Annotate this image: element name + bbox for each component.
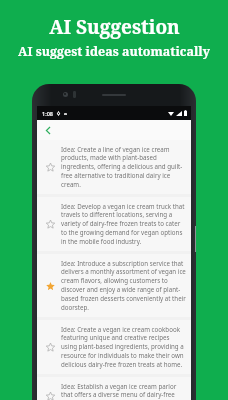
button[interactable]: Favorite xyxy=(37,320,191,374)
button[interactable]: Favorite xyxy=(37,377,191,400)
staticText: Idea: Introduce a subscription service t… xyxy=(61,259,186,312)
button[interactable]: Favorite xyxy=(37,140,191,194)
button[interactable]: Unfavorite xyxy=(37,254,191,317)
staticText: Idea: Establish a vegan ice cream parlor… xyxy=(61,382,186,400)
staticText: Idea: Create a vegan ice cream cookbook … xyxy=(61,325,186,369)
button[interactable]: Unfavorite xyxy=(42,278,58,294)
button[interactable]: Favorite xyxy=(42,388,58,400)
staticText: Idea: Develop a vegan ice cream truck th… xyxy=(61,202,186,246)
staticText: 1:08 xyxy=(42,110,53,117)
button[interactable]: Favorite xyxy=(42,216,58,232)
button[interactable]: Back xyxy=(40,122,56,138)
button[interactable]: Favorite xyxy=(37,197,191,251)
button[interactable]: Favorite xyxy=(42,339,58,355)
staticText: AI suggest ideas automatically xyxy=(18,43,210,60)
staticText: Idea: Create a line of vegan ice cream p… xyxy=(61,145,186,189)
button[interactable]: Favorite xyxy=(42,159,58,175)
staticText: AI Suggestion xyxy=(49,14,180,40)
